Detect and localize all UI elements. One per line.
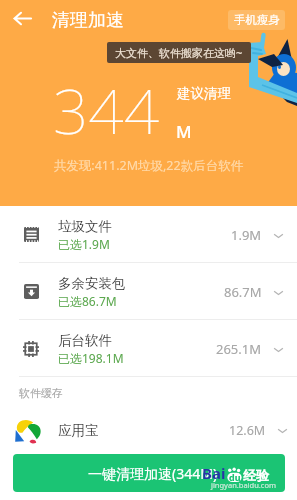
staticText: 265.1M: [216, 340, 262, 358]
staticText: jingyan.baidu.com: [211, 480, 276, 490]
staticText: 软件缓存: [19, 386, 63, 400]
staticText: 已选86.7M: [58, 293, 117, 309]
button[interactable]: 手机瘦身: [228, 10, 285, 30]
staticText: 已选1.9M: [58, 236, 110, 252]
staticText: 垃圾文件: [58, 218, 112, 235]
staticText: 建议清理: [177, 85, 231, 102]
staticText: 手机瘦身: [234, 13, 280, 27]
staticText: Bai: [202, 463, 226, 483]
staticText: 已选198.1M: [58, 350, 124, 366]
staticText: 一键清理加速(344M): [88, 464, 218, 483]
button[interactable]: 大文件、软件搬家在这哟~: [107, 42, 251, 63]
staticText: 多余安装包: [58, 275, 126, 292]
staticText: 后台软件: [58, 332, 112, 349]
staticText: 共发现:411.2M垃圾,22款后台软件: [0, 157, 297, 174]
button[interactable]: 垃圾文件: [0, 206, 297, 263]
staticText: 经验: [243, 467, 269, 483]
staticText: M: [176, 120, 192, 143]
staticText: 应用宝: [58, 422, 99, 439]
staticText: 12.6M: [229, 422, 266, 439]
button[interactable]: 多余安装包: [0, 263, 297, 320]
staticText: 1.9M: [231, 226, 262, 244]
staticText: 86.7M: [224, 283, 262, 301]
button[interactable]: 一键清理加速(344M): [13, 454, 285, 492]
staticText: 清理加速: [52, 9, 124, 32]
button[interactable]: 后台软件: [0, 320, 297, 377]
button[interactable]: 应用宝: [0, 409, 297, 451]
staticText: du: [229, 471, 241, 483]
staticText: 344: [53, 68, 160, 152]
button[interactable]: Back: [0, 2, 44, 38]
staticText: 大文件、软件搬家在这哟~: [115, 45, 243, 60]
